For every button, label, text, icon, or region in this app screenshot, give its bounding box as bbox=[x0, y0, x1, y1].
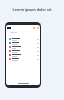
button[interactable] bbox=[6, 45, 40, 49]
button[interactable] bbox=[6, 53, 40, 57]
button[interactable] bbox=[6, 57, 40, 61]
button[interactable] bbox=[6, 37, 40, 41]
button[interactable] bbox=[6, 41, 40, 45]
button[interactable] bbox=[6, 49, 40, 53]
staticText: Lorem ipsum dolor sit bbox=[0, 7, 64, 12]
